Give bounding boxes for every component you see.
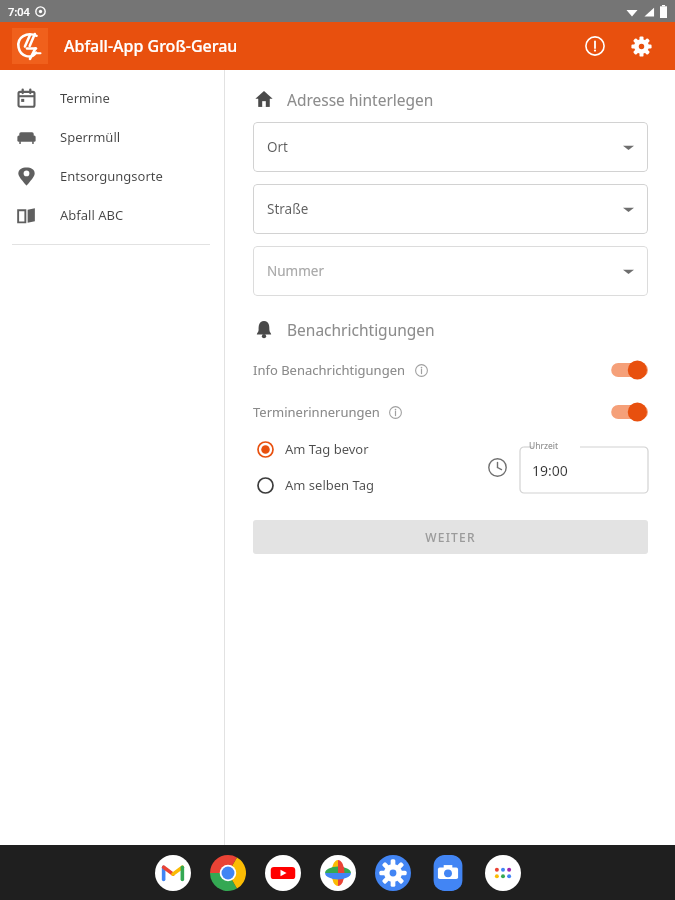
button[interactable]: Nummer bbox=[253, 246, 648, 296]
staticText: 19:00 bbox=[532, 461, 568, 480]
other: Logo Groß-Gerau bbox=[12, 28, 48, 64]
button[interactable]: Sperrmüll bbox=[0, 117, 224, 156]
staticText: Terminerinnerungen bbox=[253, 403, 380, 421]
button[interactable]: Einstellungen bbox=[374, 854, 412, 892]
staticText: Sperrmüll bbox=[60, 128, 121, 146]
button[interactable]: Ort bbox=[253, 122, 648, 172]
button[interactable]: Am Tag bevor bbox=[253, 434, 369, 464]
button[interactable]: Kamera bbox=[429, 854, 467, 892]
button[interactable]: Information bbox=[575, 26, 615, 66]
button[interactable]: WEITER bbox=[253, 520, 648, 554]
staticText: Abfall ABC bbox=[60, 206, 124, 224]
button[interactable]: Entsorgungsorte bbox=[0, 156, 224, 195]
button[interactable]: Einstellungen bbox=[621, 26, 661, 66]
staticText: Info Benachrichtigungen bbox=[253, 361, 406, 379]
staticText: Abfall-App Groß-Gerau bbox=[64, 35, 238, 57]
button[interactable]: Chrome bbox=[209, 854, 247, 892]
staticText: Entsorgungsorte bbox=[60, 167, 163, 185]
staticText: Am Tag bevor bbox=[285, 440, 369, 458]
staticText: Ort bbox=[267, 138, 288, 156]
button[interactable]: Straße bbox=[253, 184, 648, 234]
staticText: Straße bbox=[267, 200, 309, 218]
staticText: Termine bbox=[60, 89, 110, 107]
button[interactable]: Alle Apps bbox=[484, 854, 522, 892]
staticText: Benachrichtigungen bbox=[287, 319, 435, 340]
button[interactable]: Am selben Tag bbox=[253, 470, 374, 500]
button[interactable]: Uhrzeit bbox=[520, 441, 648, 493]
button[interactable]: Info Benachrichtigungen aktivieren bbox=[602, 357, 648, 383]
button[interactable]: YouTube bbox=[264, 854, 302, 892]
staticText: Adresse hinterlegen bbox=[287, 89, 434, 110]
button[interactable]: Info Info Benachrichtigungen bbox=[413, 362, 429, 378]
staticText: Nummer bbox=[267, 262, 325, 280]
button[interactable]: Abfall ABC bbox=[0, 195, 224, 234]
button[interactable]: Uhrzeit wählen bbox=[482, 452, 512, 482]
staticText: 7:04 bbox=[8, 4, 30, 19]
button[interactable]: Gmail bbox=[154, 854, 192, 892]
staticText: Am selben Tag bbox=[285, 476, 374, 494]
button[interactable]: Info Terminerinnerungen bbox=[387, 404, 403, 420]
button[interactable]: Terminerinnerungen aktivieren bbox=[602, 399, 648, 425]
staticText: Uhrzeit bbox=[529, 440, 559, 452]
button[interactable]: Termine bbox=[0, 78, 224, 117]
button[interactable]: Google Fotos bbox=[319, 854, 357, 892]
staticText: WEITER bbox=[425, 529, 476, 545]
